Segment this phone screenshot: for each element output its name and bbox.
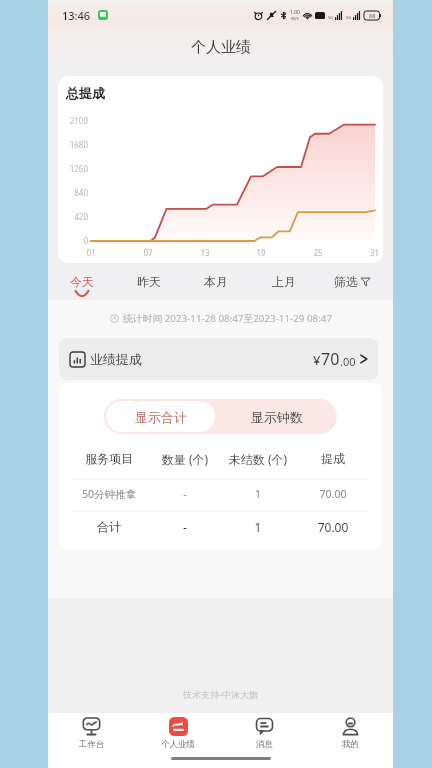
staticText: 消息 (256, 739, 273, 750)
staticText: ¥ (313, 351, 321, 369)
staticText: 1260 (58, 163, 88, 174)
staticText: 25 (309, 247, 327, 258)
staticText: 我的 (342, 739, 359, 750)
staticText: 31 (366, 247, 383, 258)
staticText: 总提成 (66, 85, 105, 101)
button[interactable]: 显示钟数 (217, 399, 337, 434)
staticText: 技术支持-中沐大旗 (48, 688, 393, 700)
staticText: 个人业绩 (161, 739, 195, 750)
staticText: 19 (252, 247, 270, 258)
staticText: 未结数 (个) (218, 451, 298, 467)
staticText: 07 (139, 247, 157, 258)
staticText: 88 (369, 12, 376, 19)
staticText: 1 (218, 519, 298, 535)
button[interactable]: 筛选 (318, 263, 386, 300)
button[interactable]: 本月 (182, 263, 250, 300)
staticText: 提成 (293, 451, 373, 466)
staticText: .00 (340, 354, 356, 369)
staticText: 70.00 (293, 519, 373, 535)
staticText: 显示钟数 (251, 409, 303, 425)
staticText: 840 (58, 187, 88, 198)
staticText: 2100 (58, 115, 88, 126)
button[interactable]: 我的 (307, 713, 393, 754)
button[interactable]: 业绩提成 (59, 338, 378, 380)
button[interactable]: 显示合计 (106, 401, 215, 432)
button[interactable]: 今天 (48, 263, 115, 300)
button[interactable]: 昨天 (115, 263, 182, 300)
staticText: 13 (196, 247, 214, 258)
staticText: 1.00 (290, 9, 300, 16)
staticText: 昨天 (137, 274, 161, 289)
button[interactable]: 消息 (221, 713, 307, 754)
button[interactable]: 工作台 (48, 713, 135, 754)
staticText: 业绩提成 (90, 351, 142, 367)
staticText: 01 (82, 247, 100, 258)
staticText: 1 (218, 487, 298, 501)
staticText: 个人业绩 (191, 38, 251, 57)
staticText: 5G (346, 15, 352, 20)
staticText: 数量 (个) (145, 451, 225, 467)
staticText: 70.00 (293, 487, 373, 501)
staticText: 5G (328, 15, 334, 20)
staticText: 70 (321, 348, 340, 370)
button[interactable]: 上月 (250, 263, 318, 300)
staticText: 上月 (272, 274, 296, 289)
staticText: 服务项目 (69, 451, 149, 466)
staticText: 420 (58, 211, 88, 222)
staticText: KB/S (291, 16, 299, 21)
staticText: 合计 (69, 519, 149, 534)
staticText: 显示合计 (135, 409, 187, 425)
button[interactable]: 个人业绩 (135, 713, 221, 754)
staticText: 统计时间 2023-11-28 08:47至2023-11-29 08:47 (123, 312, 332, 325)
staticText: - (145, 487, 225, 501)
staticText: 0 (58, 235, 88, 246)
staticText: 本月 (204, 274, 228, 289)
staticText: 筛选 (334, 274, 358, 289)
staticText: - (145, 519, 225, 535)
staticText: 13:46 (62, 8, 91, 23)
staticText: 1680 (58, 139, 88, 150)
staticText: 50分钟推拿 (69, 487, 149, 501)
staticText: 今天 (70, 274, 94, 289)
staticText: 工作台 (79, 739, 105, 750)
